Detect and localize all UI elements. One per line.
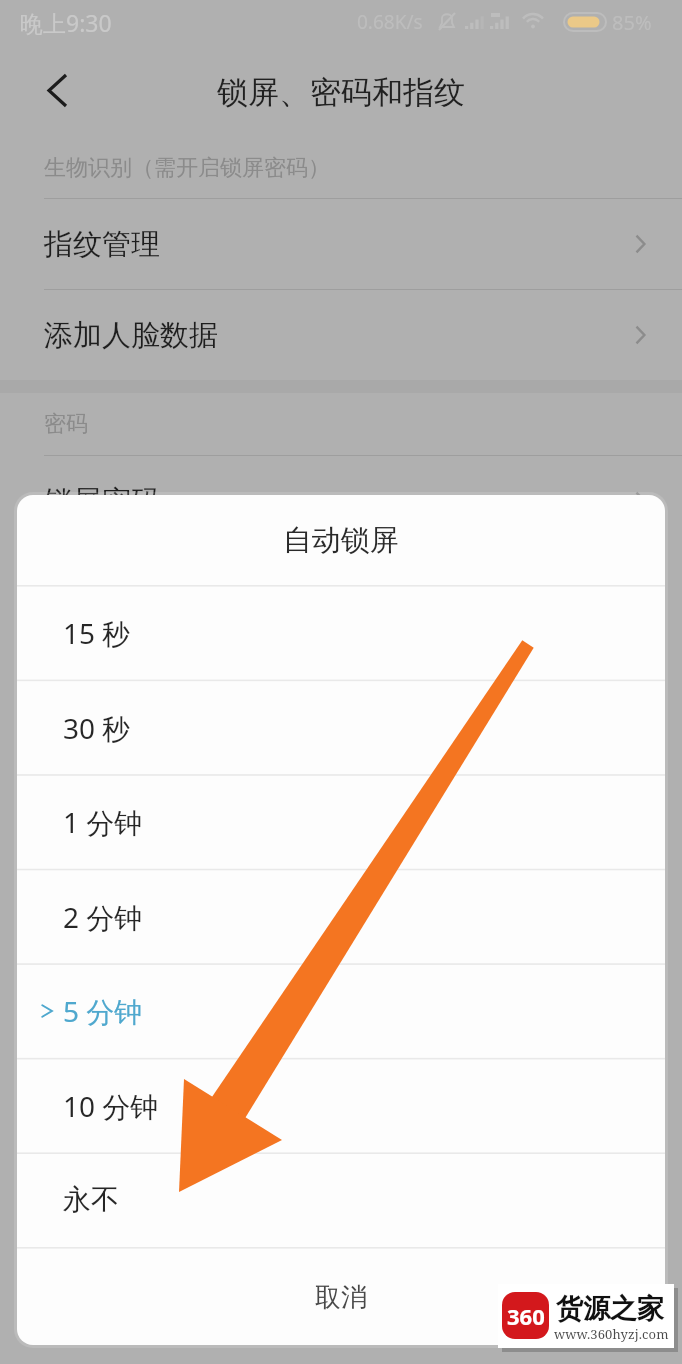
staticText: 10 分钟: [63, 1087, 159, 1125]
staticText: 自动锁屏: [283, 522, 399, 559]
button[interactable]: 添加人脸数据: [0, 290, 682, 380]
button[interactable]: 指纹管理: [0, 199, 682, 289]
button[interactable]: 5 分钟: [17, 963, 665, 1058]
staticText: 添加人脸数据: [44, 317, 218, 354]
button[interactable]: Back: [33, 66, 81, 114]
staticText: 永不: [63, 1182, 119, 1217]
staticText: 2 分钟: [63, 898, 143, 936]
staticText: www.360hyzj.com: [554, 1325, 669, 1343]
button[interactable]: 30 秒: [17, 680, 665, 775]
staticText: 生物识别（需开启锁屏密码）: [44, 154, 330, 182]
staticText: 晚上9:30: [20, 7, 112, 38]
staticText: 密码: [44, 410, 88, 438]
staticText: 锁屏、密码和指纹: [217, 73, 465, 112]
button[interactable]: 锁屏密码: [0, 456, 682, 546]
staticText: 15 秒: [63, 614, 131, 652]
staticText: 30 秒: [63, 709, 131, 747]
staticText: 货源之家: [556, 1292, 664, 1326]
staticText: 锁屏密码: [44, 483, 160, 520]
staticText: 85%: [612, 9, 652, 36]
staticText: 5 分钟: [63, 992, 143, 1030]
staticText: 360: [507, 1301, 545, 1331]
button[interactable]: 取消: [17, 1247, 665, 1345]
button[interactable]: 永不: [17, 1152, 665, 1247]
staticText: 1 分钟: [63, 803, 143, 841]
staticText: 指纹管理: [44, 226, 160, 263]
button[interactable]: 15 秒: [17, 585, 665, 680]
button[interactable]: 10 分钟: [17, 1058, 665, 1153]
staticText: 取消: [315, 1281, 367, 1314]
staticText: 0.68K/s: [357, 9, 423, 35]
button[interactable]: 2 分钟: [17, 869, 665, 964]
button[interactable]: 1 分钟: [17, 774, 665, 869]
